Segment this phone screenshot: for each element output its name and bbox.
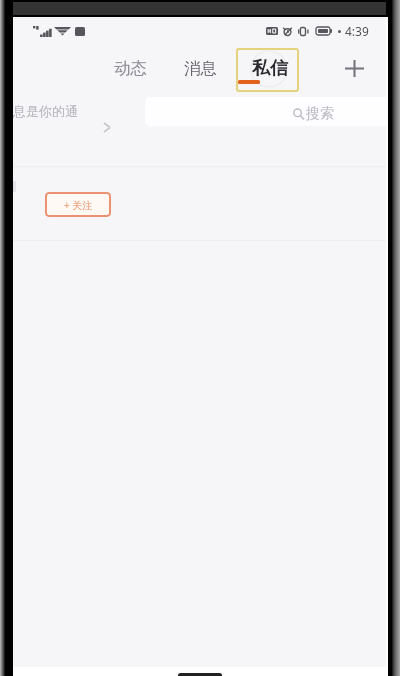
staticText: 消息 bbox=[184, 58, 217, 79]
button[interactable]: Add bbox=[335, 49, 373, 87]
staticText: + 关注 bbox=[64, 198, 93, 212]
button[interactable]: 私信 bbox=[236, 48, 299, 92]
button[interactable]: 消息 bbox=[176, 50, 225, 87]
staticText: 搜索 bbox=[306, 105, 334, 123]
staticText: 动态 bbox=[114, 58, 147, 79]
staticText: 息是你的通 bbox=[13, 103, 78, 119]
button[interactable]: 动态 bbox=[106, 50, 155, 87]
button[interactable]: 搜索 bbox=[145, 97, 386, 126]
staticText: 私信 bbox=[252, 57, 288, 80]
button[interactable]: + 关注 bbox=[45, 192, 111, 217]
staticText: 4:39 bbox=[345, 23, 369, 39]
